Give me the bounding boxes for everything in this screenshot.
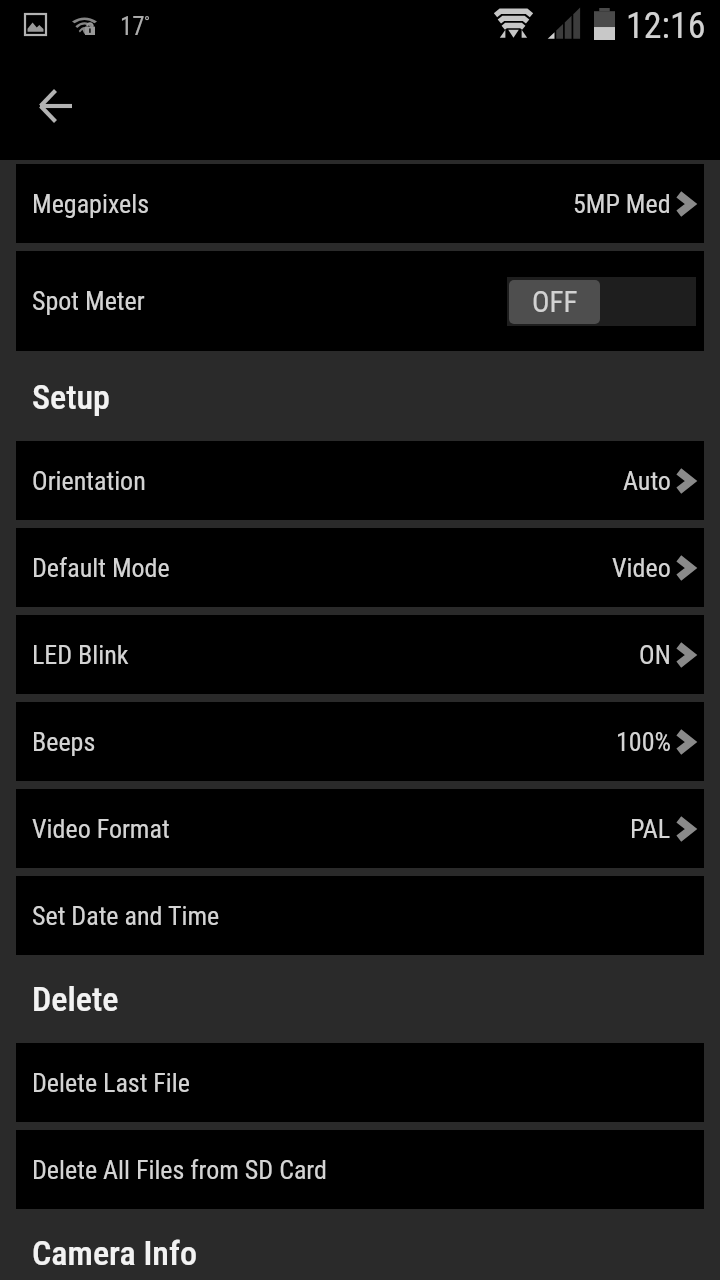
staticText: OFF [532, 285, 578, 319]
button[interactable]: Back [24, 74, 88, 138]
staticText: Spot Meter [32, 286, 145, 316]
button[interactable]: Beeps [16, 702, 704, 781]
button[interactable]: Delete All Files from SD Card [16, 1130, 704, 1209]
staticText: Delete Last File [32, 1068, 190, 1098]
staticText: Default Mode [32, 553, 170, 583]
button[interactable]: Set Date and Time [16, 876, 704, 955]
staticText: 5MP Med [573, 189, 671, 219]
staticText: Megapixels [32, 189, 150, 219]
staticText: LED Blink [32, 640, 129, 670]
staticText: Beeps [32, 727, 96, 757]
staticText: Orientation [32, 466, 146, 496]
staticText: Delete [32, 979, 119, 1019]
staticText: 17 [120, 12, 145, 41]
staticText: Auto [623, 466, 671, 496]
button[interactable]: Megapixels [16, 164, 704, 243]
button[interactable]: OFF [507, 277, 696, 326]
staticText: 12:16 [626, 5, 706, 47]
staticText: PAL [630, 814, 671, 844]
staticText: Video [612, 553, 671, 583]
button[interactable]: Spot Meter [16, 251, 704, 351]
button[interactable]: Video Format [16, 789, 704, 868]
button[interactable]: Default Mode [16, 528, 704, 607]
button[interactable]: LED Blink [16, 615, 704, 694]
staticText: Setup [32, 377, 110, 417]
staticText: Video Format [32, 814, 170, 844]
staticText: ° [144, 13, 150, 32]
staticText: ON [639, 640, 671, 670]
staticText: Set Date and Time [32, 901, 220, 931]
button[interactable]: Delete Last File [16, 1043, 704, 1122]
staticText: Delete All Files from SD Card [32, 1155, 327, 1185]
button[interactable]: Orientation [16, 441, 704, 520]
staticText: Camera Info [32, 1233, 197, 1273]
staticText: 100% [616, 727, 671, 757]
